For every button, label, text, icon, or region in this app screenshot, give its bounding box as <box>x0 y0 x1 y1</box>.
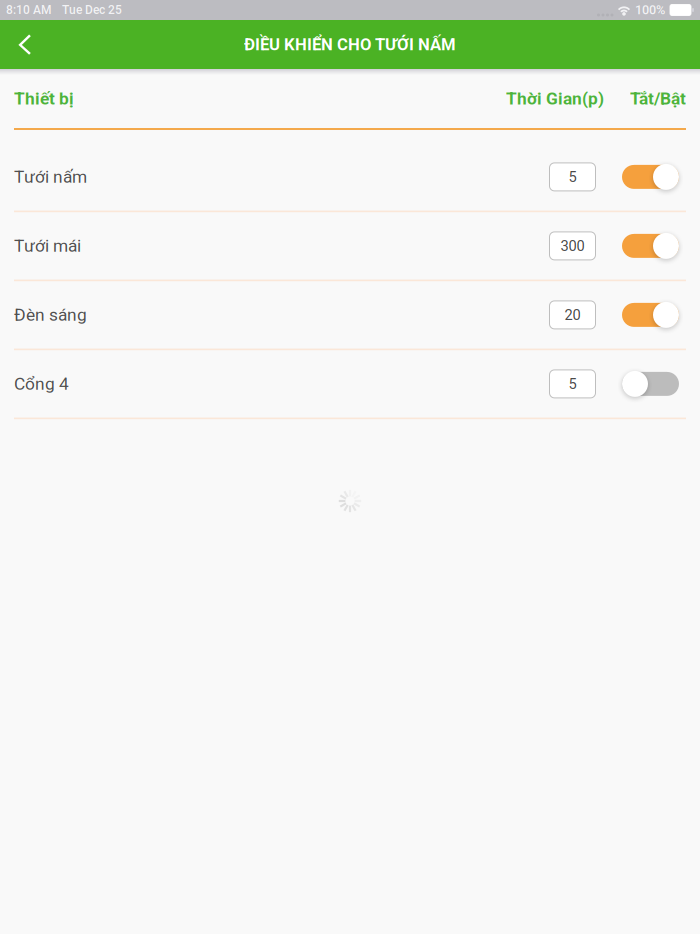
staticText: Tưới mái <box>14 236 81 256</box>
staticText: 8:10 AM <box>6 3 51 17</box>
staticText: Thời Gian(p) <box>506 88 604 109</box>
staticText: Thiết bị <box>14 88 74 109</box>
button[interactable]: Tưới nấm duration, 5 minutes <box>530 151 615 203</box>
staticText: Tắt/Bật <box>630 88 686 109</box>
staticText: 20 <box>564 306 580 323</box>
staticText: ĐIỀU KHIỂN CHO TƯỚI NẤM <box>244 35 456 54</box>
staticText: 5 <box>568 168 576 185</box>
button[interactable]: Đèn sáng duration, 20 minutes <box>530 289 615 341</box>
button[interactable]: Tưới mái duration, 300 minutes <box>530 220 615 272</box>
staticText: 300 <box>560 237 584 254</box>
button[interactable]: Turn off Tưới nấm <box>615 151 686 203</box>
button[interactable]: Turn off Đèn sáng <box>615 289 686 341</box>
staticText: 100% <box>635 3 665 17</box>
button[interactable]: Turn on Cổng 4 <box>615 358 686 410</box>
staticText: 5 <box>568 375 576 392</box>
button[interactable]: Cổng 4 duration, 5 minutes <box>530 358 615 410</box>
staticText: Đèn sáng <box>14 305 87 325</box>
button[interactable]: Turn off Tưới mái <box>615 220 686 272</box>
button[interactable]: Back <box>0 20 50 69</box>
staticText: Tue Dec 25 <box>62 3 122 17</box>
staticText: Cổng 4 <box>14 374 69 394</box>
staticText: Tưới nấm <box>14 167 87 187</box>
